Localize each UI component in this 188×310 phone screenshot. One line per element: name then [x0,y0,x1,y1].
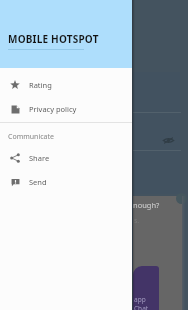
staticText: app Chat [134,295,159,310]
staticText: Rating [29,80,52,90]
staticText: Privacy policy [29,104,77,114]
staticText: Share [29,153,50,163]
staticText: MOBILE HOTSPOT [8,32,99,46]
staticText: Send [29,177,47,187]
button[interactable]: Rating [0,73,132,97]
button[interactable]: Toggle password visibility [162,134,175,147]
staticText: Communicate [8,132,54,142]
button[interactable]: MOBILE HOTSPOT [0,0,132,68]
button[interactable]: Send [0,170,132,194]
button[interactable]: app Chat [133,266,159,310]
staticText: nough? [133,200,160,210]
button[interactable]: Share [0,146,132,170]
staticText: s. [134,216,140,226]
button[interactable]: Privacy policy [0,97,132,121]
